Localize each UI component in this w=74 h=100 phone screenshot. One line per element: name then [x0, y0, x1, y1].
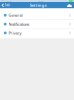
button[interactable]: Notifications: [0, 20, 74, 28]
button[interactable]: Privacy: [0, 29, 74, 37]
button[interactable]: Sync: [67, 2, 74, 9]
staticText: Back: [5, 3, 10, 7]
staticText: 9:41 AM: [38, 0, 43, 2]
staticText: General: [8, 13, 22, 18]
staticText: Settings: [30, 3, 47, 8]
button[interactable]: General: [0, 11, 74, 19]
staticText: Privacy: [8, 30, 21, 36]
staticText: ••••◦ Carrier: [1, 0, 12, 2]
button[interactable]: Back: [0, 2, 10, 9]
staticText: Notifications: [8, 21, 29, 27]
